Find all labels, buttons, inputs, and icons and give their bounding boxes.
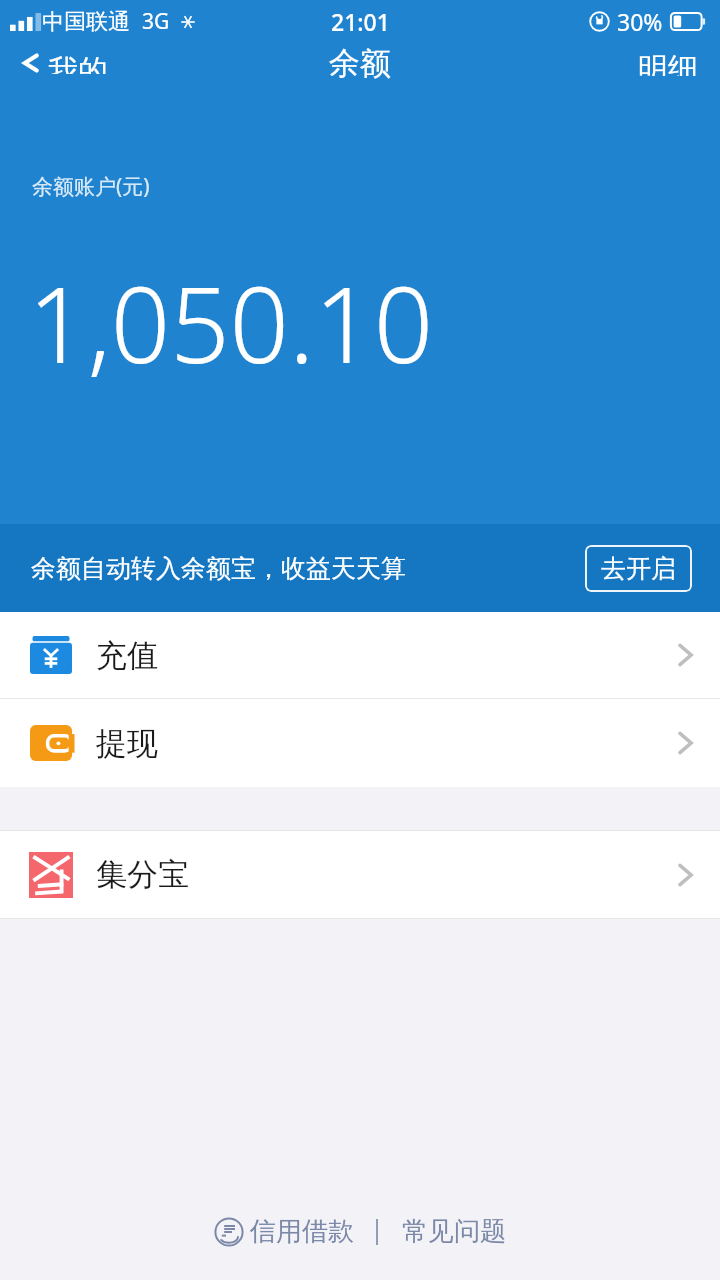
staticText: 我的 bbox=[48, 52, 108, 74]
staticText: 余额 bbox=[329, 44, 391, 83]
staticText: 去开启 bbox=[601, 553, 676, 584]
staticText: 中国联通 bbox=[42, 8, 130, 36]
staticText: 21:01 bbox=[331, 6, 390, 37]
button[interactable]: 充值 bbox=[0, 612, 720, 698]
button[interactable]: 去开启 bbox=[585, 545, 692, 592]
button[interactable]: 集分宝 bbox=[0, 831, 720, 918]
staticText: 余额账户(元) bbox=[32, 172, 150, 201]
button[interactable]: 我的 bbox=[0, 42, 122, 84]
staticText: 3G bbox=[142, 7, 170, 36]
button[interactable]: 常见问题 bbox=[396, 1209, 512, 1254]
staticText: 30% bbox=[617, 6, 663, 37]
button[interactable]: 提现 bbox=[0, 699, 720, 787]
staticText: 1,050.10 bbox=[28, 252, 434, 394]
button[interactable]: 明细 bbox=[616, 42, 720, 84]
button[interactable]: 信用借款 bbox=[208, 1209, 360, 1254]
staticText: 信用借款 bbox=[250, 1215, 354, 1248]
staticText: 常见问题 bbox=[402, 1215, 506, 1248]
staticText: 提现 bbox=[96, 724, 158, 763]
staticText: 集分宝 bbox=[96, 855, 189, 894]
staticText: 明细 bbox=[638, 50, 698, 76]
staticText: 充值 bbox=[96, 636, 158, 675]
staticText: 余额自动转入余额宝，收益天天算 bbox=[31, 553, 406, 584]
